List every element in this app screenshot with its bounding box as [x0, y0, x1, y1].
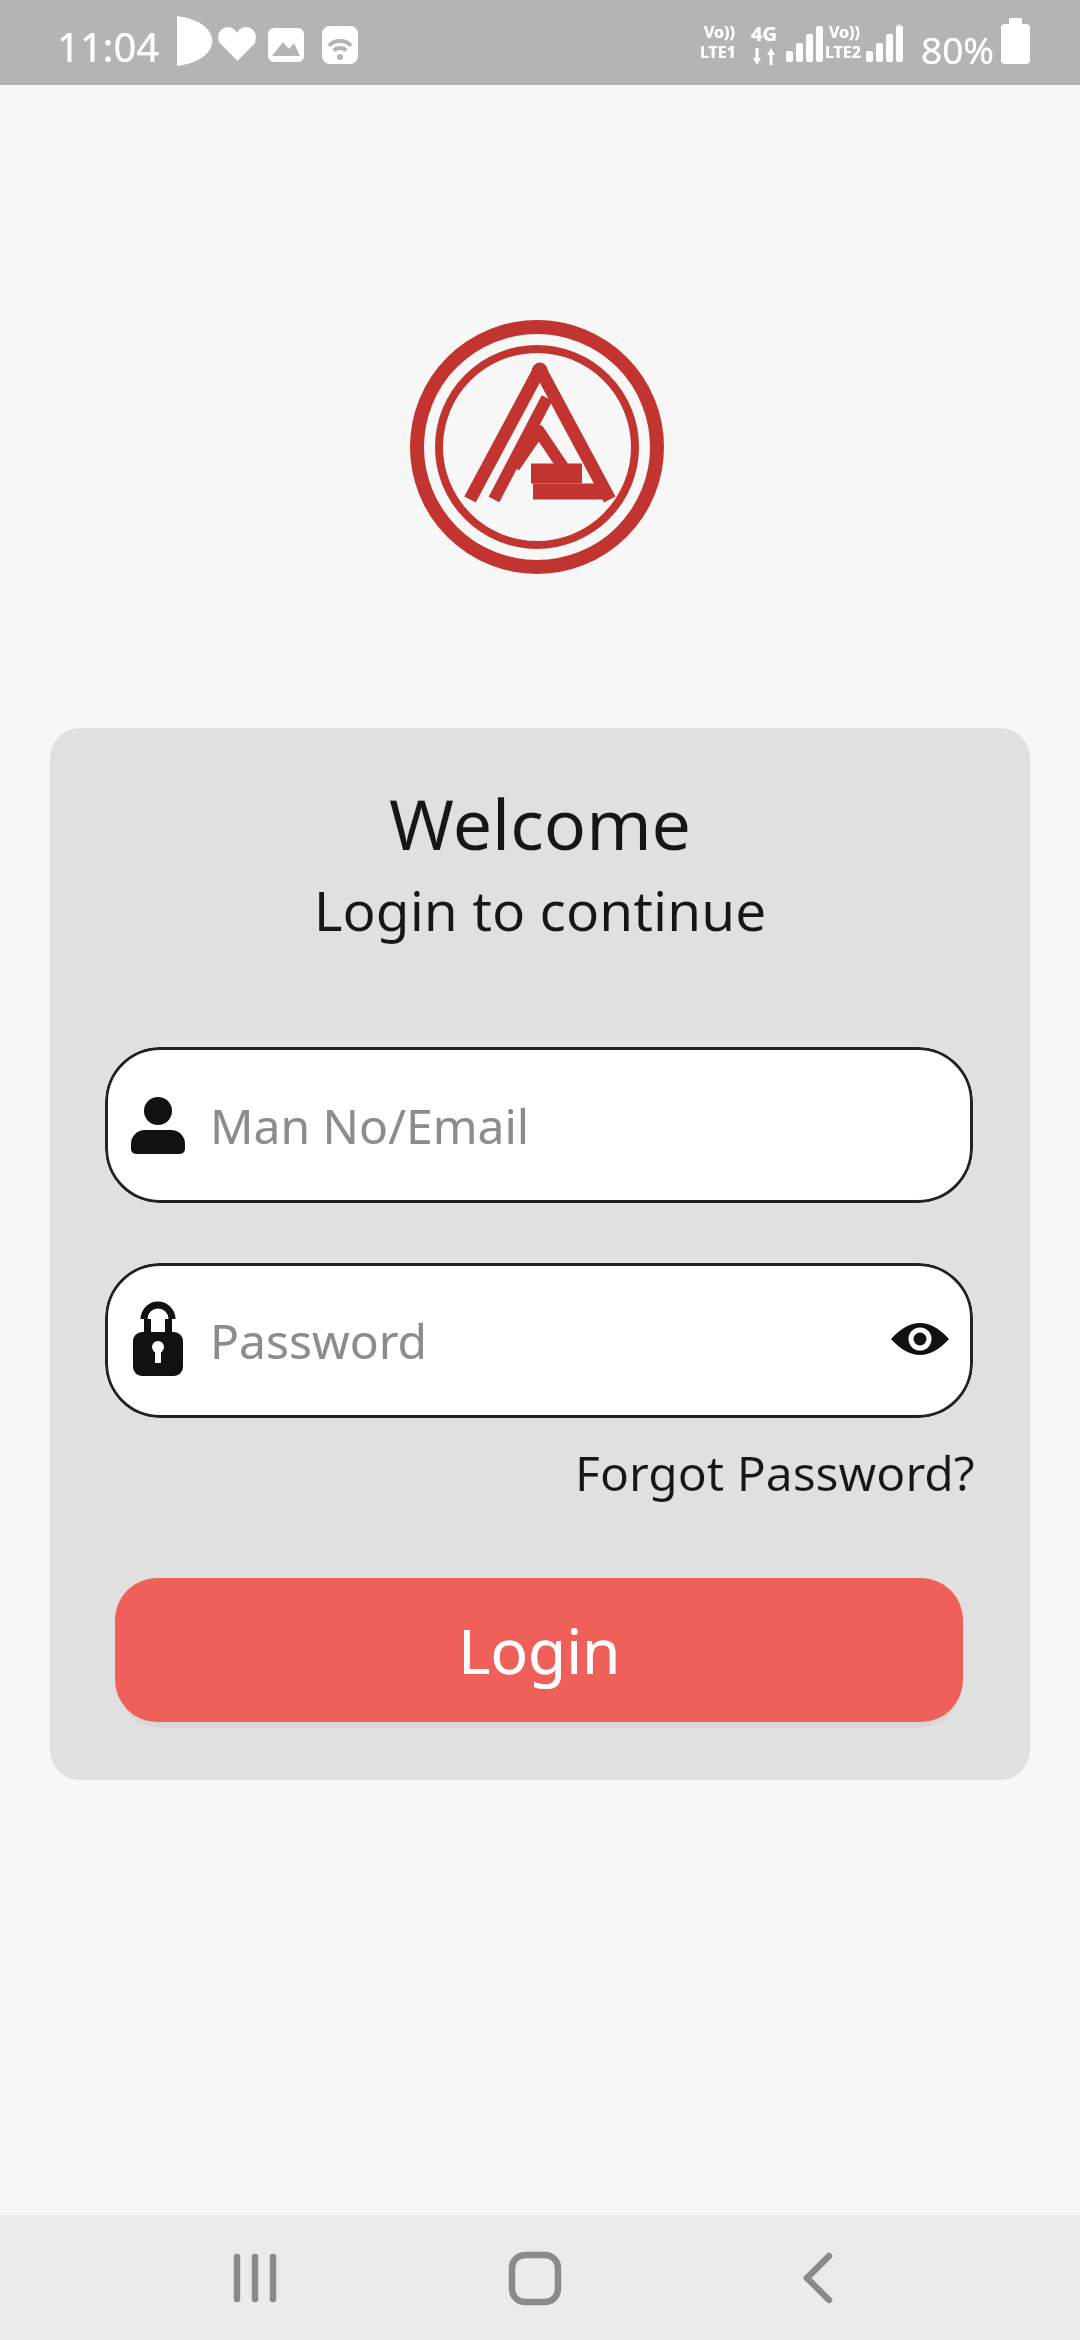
staticText: Vo)): [829, 21, 860, 43]
button[interactable]: [763, 2230, 873, 2325]
button[interactable]: Man No/Email: [105, 1047, 973, 1203]
staticText: Login: [458, 1608, 621, 1692]
staticText: Login to continue: [0, 872, 1080, 947]
staticText: Man No/Email: [210, 1093, 530, 1158]
staticText: LTE2: [825, 41, 861, 63]
staticText: 11:04: [57, 19, 160, 73]
button[interactable]: [200, 2230, 310, 2325]
button[interactable]: Forgot Password?: [575, 1440, 975, 1505]
staticText: Welcome: [0, 775, 1080, 870]
staticText: Vo)): [704, 21, 735, 43]
button[interactable]: [480, 2230, 590, 2325]
staticText: LTE1: [700, 41, 736, 63]
staticText: Password: [210, 1308, 428, 1373]
button[interactable]: Password: [105, 1263, 973, 1418]
staticText: 4G: [751, 20, 777, 47]
button[interactable]: Login: [115, 1578, 963, 1722]
staticText: Forgot Password?: [575, 1440, 975, 1505]
staticText: 80%: [921, 24, 995, 74]
